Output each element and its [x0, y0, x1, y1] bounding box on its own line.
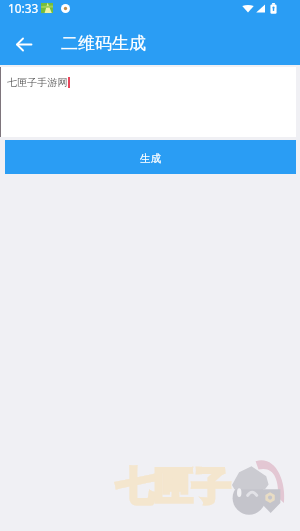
staticText: 七匣子手游网 [7, 76, 68, 89]
button[interactable]: 七匣子手游网 [0, 67, 296, 137]
button[interactable]: 生成 [5, 140, 296, 174]
staticText: 七匣子 [116, 463, 230, 511]
staticText: 二维码生成 [61, 33, 146, 54]
staticText: 10:33 [8, 0, 39, 16]
button[interactable]: Back [8, 28, 40, 60]
staticText: 七匣子 [116, 463, 230, 511]
staticText: 生成 [140, 152, 161, 165]
